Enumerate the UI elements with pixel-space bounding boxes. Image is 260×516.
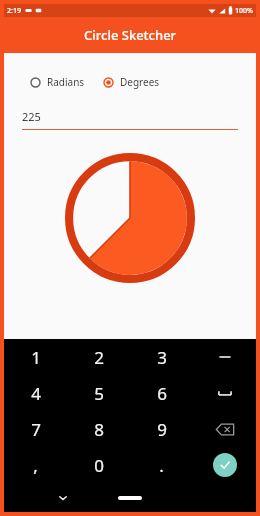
staticText: .: [159, 454, 164, 477]
button[interactable]: Hide keyboard: [54, 489, 72, 507]
button[interactable]: 5: [67, 375, 130, 411]
staticText: 8: [94, 418, 104, 441]
staticText: 1: [31, 346, 41, 369]
button[interactable]: Home: [118, 496, 142, 500]
staticText: 3: [157, 346, 167, 369]
button[interactable]: 9: [130, 411, 193, 447]
staticText: Degrees: [120, 75, 160, 89]
button[interactable]: ,: [4, 447, 67, 483]
staticText: 2:19: [7, 6, 21, 16]
button[interactable]: Radians: [28, 73, 87, 91]
button[interactable]: 4: [4, 375, 67, 411]
button[interactable]: 7: [4, 411, 67, 447]
staticText: 9: [157, 418, 167, 441]
button[interactable]: 1: [4, 339, 67, 375]
button[interactable]: 0: [67, 447, 130, 483]
button[interactable]: 2: [67, 339, 130, 375]
staticText: Radians: [47, 75, 85, 89]
button[interactable]: Minus: [193, 339, 256, 375]
staticText: 0: [94, 454, 104, 477]
staticText: 2: [94, 346, 104, 369]
button[interactable]: Space: [193, 375, 256, 411]
button[interactable]: 3: [130, 339, 193, 375]
button[interactable]: 6: [130, 375, 193, 411]
staticText: 5: [94, 382, 104, 405]
staticText: 225: [22, 109, 41, 124]
button[interactable]: Degrees: [101, 73, 162, 91]
staticText: ,: [33, 454, 38, 477]
staticText: Circle Sketcher: [84, 26, 177, 44]
staticText: 7: [31, 418, 41, 441]
staticText: 4: [31, 382, 41, 405]
staticText: 100%: [235, 6, 253, 16]
button[interactable]: Backspace: [193, 411, 256, 447]
staticText: 6: [157, 382, 167, 405]
button[interactable]: 8: [67, 411, 130, 447]
button[interactable]: Done: [193, 447, 256, 483]
button[interactable]: .: [130, 447, 193, 483]
